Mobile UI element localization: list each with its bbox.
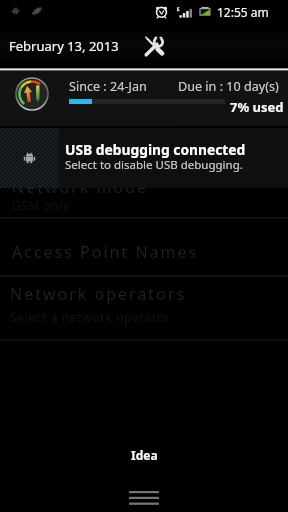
button[interactable]: USB debugging connected bbox=[0, 128, 288, 188]
staticText: Due in : 10 day(s) bbox=[178, 78, 279, 95]
button[interactable]: Network operators bbox=[0, 278, 288, 333]
staticText: February 13, 2013 bbox=[9, 37, 119, 55]
staticText: Select a network operator bbox=[10, 309, 171, 325]
button[interactable]: Access Point Names bbox=[0, 224, 288, 278]
staticText: Network operators bbox=[10, 283, 187, 305]
staticText: GSM only bbox=[12, 197, 71, 213]
button[interactable]: Since : 24-Jan bbox=[0, 71, 288, 126]
staticText: Select to disable USB debugging. bbox=[65, 157, 243, 173]
staticText: USB debugging connected bbox=[65, 140, 246, 159]
button[interactable]: Close notification shade bbox=[122, 486, 166, 512]
staticText: Idea bbox=[131, 447, 158, 463]
staticText: Access Point Names bbox=[12, 241, 199, 263]
staticText: 7% used bbox=[230, 98, 284, 116]
button[interactable]: Settings bbox=[141, 32, 169, 60]
staticText: Since : 24-Jan bbox=[69, 78, 147, 95]
staticText: 12:55 am bbox=[217, 4, 269, 20]
staticText: Network mode bbox=[12, 176, 149, 198]
